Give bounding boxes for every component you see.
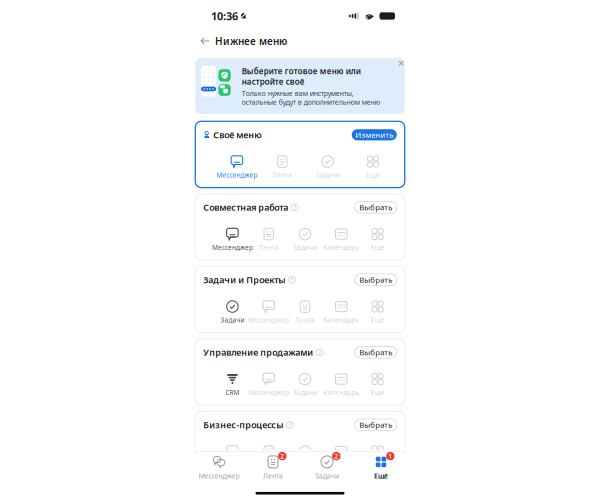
button[interactable]: Календарь xyxy=(323,373,359,397)
staticText: Календарь xyxy=(323,388,359,397)
staticText: ? xyxy=(288,420,291,429)
button[interactable]: Ещё xyxy=(359,300,396,324)
button[interactable]: Задачи xyxy=(305,155,350,179)
staticText: Выбрать xyxy=(359,202,392,212)
staticText: Мессенджер xyxy=(248,388,289,397)
staticText: Мессенджер xyxy=(212,243,253,252)
button[interactable]: Мессенджер xyxy=(251,373,287,397)
button[interactable]: 2 xyxy=(250,456,296,480)
button[interactable] xyxy=(323,445,359,469)
staticText: Лента xyxy=(259,243,279,252)
button[interactable]: Мессенджер xyxy=(214,155,260,179)
button[interactable]: Back xyxy=(199,34,212,48)
staticText: Календарь xyxy=(323,315,359,324)
staticText: Своё меню xyxy=(213,129,261,141)
staticText: Нижнее меню xyxy=(215,34,287,48)
button[interactable]: Выбрать xyxy=(355,201,397,213)
button[interactable]: Выбрать xyxy=(355,274,397,286)
button[interactable]: Лента xyxy=(251,228,287,252)
staticText: Ещё xyxy=(371,243,385,252)
staticText: Задачи xyxy=(315,471,339,480)
staticText: Задачи xyxy=(220,315,244,324)
staticText: Мессенджер xyxy=(248,315,289,324)
staticText: Лента xyxy=(295,315,315,324)
staticText: Ещё xyxy=(371,388,385,397)
button[interactable]: Close xyxy=(396,58,407,69)
staticText: Мессенджер xyxy=(216,170,257,179)
button[interactable]: Календарь xyxy=(323,228,359,252)
button[interactable]: Задачи xyxy=(287,373,323,397)
staticText: Бизнес-процессы xyxy=(203,419,283,431)
staticText: Мессенджер xyxy=(198,471,239,480)
staticText: Выбрать xyxy=(359,274,392,285)
staticText: ? xyxy=(293,203,296,212)
staticText: Календарь xyxy=(323,243,359,252)
staticText: Только нужные вам инструменты, xyxy=(242,89,354,98)
button[interactable] xyxy=(359,445,396,469)
button[interactable]: CRM xyxy=(214,373,250,397)
button[interactable]: Выбрать xyxy=(355,419,397,431)
staticText: Ещё xyxy=(374,471,388,480)
staticText: Лента xyxy=(263,471,283,480)
staticText: ? xyxy=(318,348,321,357)
button[interactable]: Лента xyxy=(287,300,323,324)
button[interactable]: Лента xyxy=(260,155,305,179)
button[interactable]: Выбрать xyxy=(355,346,397,358)
button[interactable]: 2 xyxy=(304,456,350,480)
button[interactable]: Ещё xyxy=(359,373,396,397)
button[interactable]: Ещё xyxy=(350,155,396,179)
button[interactable]: Ещё xyxy=(359,228,396,252)
staticText: Задачи xyxy=(316,170,340,179)
staticText: Совместная работа xyxy=(203,201,288,213)
button[interactable]: Задачи xyxy=(287,228,323,252)
staticText: Изменить xyxy=(355,129,393,140)
button[interactable]: Календарь xyxy=(323,300,359,324)
staticText: Выберите готовое меню или xyxy=(242,66,361,77)
staticText: 2 xyxy=(280,452,284,461)
staticText: Задачи xyxy=(293,243,317,252)
button[interactable] xyxy=(251,445,287,469)
staticText: 10:36 xyxy=(211,9,238,23)
button[interactable] xyxy=(214,445,250,469)
staticText: Ещё xyxy=(371,315,385,324)
staticText: 1 xyxy=(388,452,392,461)
staticText: Управление продажами xyxy=(203,346,313,358)
staticText: 2 xyxy=(334,452,338,461)
staticText: CRM xyxy=(225,388,239,397)
button[interactable]: Задачи xyxy=(214,300,250,324)
staticText: остальные будут в дополнительном меню xyxy=(242,97,380,107)
staticText: настройте своё xyxy=(242,76,305,87)
staticText: Ещё xyxy=(366,170,380,179)
staticText: Выбрать xyxy=(359,419,392,430)
button[interactable]: Мессенджер xyxy=(251,300,287,324)
button[interactable] xyxy=(287,445,323,469)
button[interactable]: Мессенджер xyxy=(214,228,250,252)
staticText: Лента xyxy=(272,170,292,179)
staticText: Задачи xyxy=(293,388,317,397)
staticText: Выбрать xyxy=(359,347,392,357)
staticText: Задачи и Проекты xyxy=(203,274,285,286)
staticText: ? xyxy=(290,275,293,284)
button[interactable]: Изменить xyxy=(352,129,397,140)
button[interactable]: 1 xyxy=(358,456,404,480)
button[interactable]: Мессенджер xyxy=(196,456,242,480)
